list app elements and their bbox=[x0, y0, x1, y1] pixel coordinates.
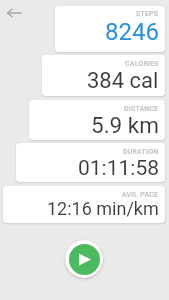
staticText: DISTANCE bbox=[124, 105, 159, 113]
staticText: 01:11:58 bbox=[78, 156, 159, 181]
staticText: 8246 bbox=[105, 18, 159, 46]
button[interactable]: Start workout bbox=[65, 240, 103, 278]
button[interactable]: STEPS bbox=[55, 6, 165, 52]
staticText: 384 cal bbox=[87, 68, 159, 94]
button[interactable]: DURATION bbox=[16, 143, 165, 182]
button[interactable]: DISTANCE bbox=[29, 100, 165, 140]
staticText: STEPS bbox=[136, 10, 159, 18]
button[interactable]: Back bbox=[1, 0, 27, 25]
staticText: CALORIES bbox=[125, 60, 159, 68]
button[interactable]: AVG. PACE bbox=[3, 186, 165, 223]
staticText: 5.9 km bbox=[91, 112, 159, 138]
staticText: 12:16 min/km bbox=[47, 198, 159, 219]
staticText: AVG. PACE bbox=[122, 191, 159, 199]
staticText: DURATION bbox=[123, 148, 159, 156]
button[interactable]: CALORIES bbox=[42, 55, 165, 96]
